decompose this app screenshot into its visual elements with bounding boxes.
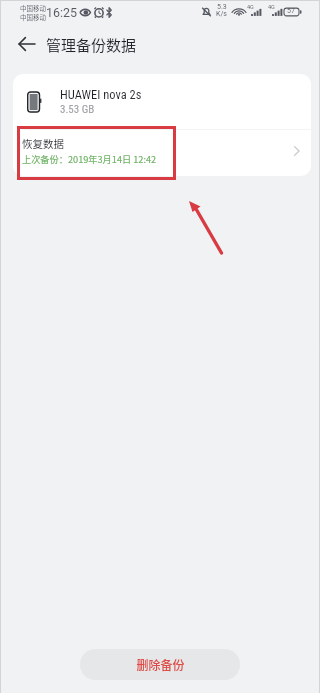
- staticText: 管理备份数据: [46, 34, 137, 56]
- staticText: 4G: [247, 4, 254, 10]
- button[interactable]: 恢复数据: [13, 130, 311, 176]
- staticText: 3.53 GB: [60, 103, 95, 116]
- staticText: 中国移动: [20, 3, 46, 12]
- button[interactable]: 删除备份: [80, 649, 240, 680]
- button[interactable]: HUAWEI nova 2s: [13, 74, 311, 129]
- staticText: 中国移动: [20, 12, 46, 21]
- staticText: 恢复数据: [22, 136, 64, 151]
- staticText: HUAWEI nova 2s: [60, 87, 142, 102]
- staticText: 4G: [268, 4, 275, 10]
- staticText: 删除备份: [136, 656, 185, 673]
- button[interactable]: Back: [13, 30, 41, 58]
- staticText: K/s: [216, 10, 227, 18]
- staticText: 上次备份：2019年3月14日 12:42: [22, 152, 157, 165]
- staticText: 5.3: [217, 3, 227, 11]
- staticText: 16:25: [46, 5, 78, 20]
- staticText: 57: [287, 7, 295, 15]
